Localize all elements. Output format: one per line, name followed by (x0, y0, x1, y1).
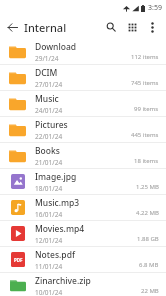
staticText: Zinarchive.zip (35, 275, 91, 287)
button[interactable]: Grid view (123, 18, 141, 36)
button[interactable]: Music (0, 91, 166, 117)
staticText: 745 items (131, 79, 159, 87)
staticText: Image.jpg (35, 171, 77, 183)
button[interactable]: DCIM (0, 65, 166, 91)
staticText: 21/01/24 (35, 158, 63, 167)
button[interactable]: Pictures (0, 117, 166, 143)
button[interactable]: Download (0, 39, 166, 65)
staticText: 3:59 (148, 3, 162, 13)
staticText: Download (35, 41, 77, 53)
staticText: 29/1/24 (35, 54, 59, 63)
staticText: 12/01/24 (35, 236, 63, 245)
button[interactable]: Image.jpg (0, 169, 166, 195)
button[interactable]: Back (0, 15, 24, 39)
staticText: 11/01/24 (35, 262, 63, 271)
staticText: 112 items (131, 53, 159, 61)
staticText: 22/01/24 (35, 132, 63, 141)
staticText: 4.22 MB (136, 209, 159, 217)
staticText: 1.88 GB (137, 235, 159, 243)
button[interactable]: Search (102, 18, 120, 36)
button[interactable]: More options (143, 18, 161, 36)
button[interactable]: Zinarchive.zip (0, 273, 166, 296)
staticText: 24/01/24 (35, 106, 63, 115)
staticText: Music (35, 93, 59, 105)
staticText: Notes.pdf (35, 249, 75, 261)
staticText: 1.25 MB (136, 183, 159, 191)
button[interactable]: Books (0, 143, 166, 169)
staticText: 445 items (131, 131, 159, 139)
staticText: 6.8 MB (139, 261, 159, 269)
staticText: 16/01/24 (35, 210, 63, 219)
staticText: 18 items (134, 157, 159, 165)
staticText: 22 MB (141, 287, 159, 295)
button[interactable]: PDF (0, 247, 166, 273)
staticText: 10/01/24 (35, 288, 63, 296)
staticText: 18/01/24 (35, 184, 63, 193)
staticText: 99 items (134, 105, 159, 113)
staticText: Books (35, 145, 60, 157)
staticText: PDF (14, 257, 23, 263)
staticText: Internal Storage (24, 20, 102, 35)
staticText: Movies.mp4 (35, 223, 85, 235)
staticText: DCIM (35, 67, 58, 79)
staticText: 27/01/24 (35, 80, 63, 89)
staticText: Music.mp3 (35, 197, 80, 209)
staticText: Pictures (35, 119, 68, 131)
button[interactable]: Movies.mp4 (0, 221, 166, 247)
button[interactable]: Music.mp3 (0, 195, 166, 221)
